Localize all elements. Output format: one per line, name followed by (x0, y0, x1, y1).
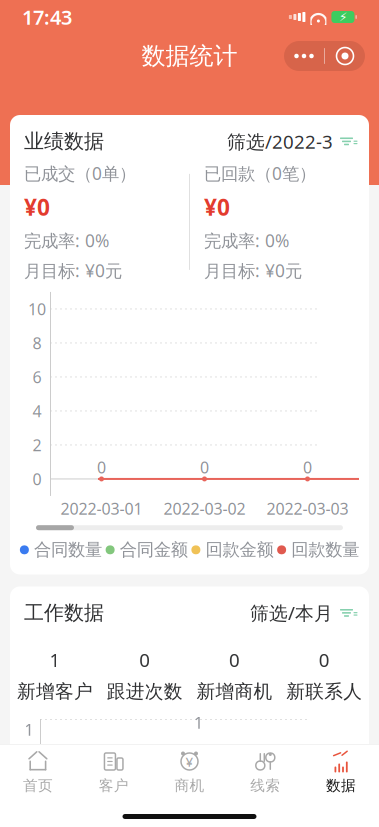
button[interactable]: 筛选/2022-3 (227, 129, 355, 154)
staticText: 4 (32, 400, 41, 421)
staticText: 2022-03-01 (60, 498, 142, 519)
staticText: 0 (319, 647, 330, 672)
button[interactable]: 数据 (303, 750, 379, 794)
staticText: 17:43 (22, 4, 72, 30)
staticText: 跟进次数 (107, 680, 183, 703)
staticText: 0 (229, 647, 240, 672)
button[interactable]: ¥ (152, 750, 227, 794)
button[interactable]: Close (325, 41, 365, 71)
staticText: 数据统计 (141, 41, 237, 71)
staticText: 10 (28, 298, 46, 319)
staticText: 线索 (250, 776, 280, 794)
staticText: 业绩数据 (24, 129, 104, 154)
staticText: 0 (139, 647, 150, 672)
staticText: 1 (194, 712, 203, 733)
staticText: 合同数量 (34, 539, 102, 560)
staticText: 完成率: 0% (204, 229, 289, 252)
staticText: 0 (200, 457, 209, 478)
staticText: ¥ (185, 753, 193, 770)
staticText: 月目标: ¥0元 (204, 259, 302, 282)
staticText: 新增客户 (17, 680, 93, 703)
button[interactable]: More (284, 41, 324, 71)
staticText: 已成交（0单） (24, 162, 136, 185)
staticText: ⚡︎ (339, 10, 347, 24)
staticText: 月目标: ¥0元 (24, 259, 122, 282)
button[interactable]: 筛选/本月 (250, 600, 355, 625)
staticText: ¥0 (24, 192, 50, 222)
staticText: ¥0 (204, 192, 230, 222)
staticText: 8 (32, 332, 41, 353)
staticText: 商机 (174, 776, 204, 794)
button[interactable]: 首页 (0, 750, 76, 794)
button[interactable]: 线索 (227, 750, 303, 794)
staticText: 回款数量 (291, 539, 359, 560)
staticText: 合同金额 (120, 539, 188, 560)
staticText: 2022-03-03 (266, 498, 348, 519)
staticText: 0 (97, 457, 106, 478)
staticText: 2022-03-02 (163, 498, 245, 519)
staticText: 工作数据 (24, 601, 104, 625)
staticText: 完成率: 0% (24, 229, 109, 252)
staticText: 新联系人 (286, 680, 362, 703)
staticText: 首页 (23, 776, 53, 794)
staticText: 筛选/2022-3 (227, 129, 333, 154)
staticText: 0 (303, 457, 312, 478)
staticText: 1 (49, 647, 60, 672)
staticText: 回款金额 (205, 539, 273, 560)
staticText: 2 (32, 434, 41, 455)
staticText: 客户 (99, 776, 129, 794)
staticText: 数据 (326, 776, 356, 794)
staticText: 0 (32, 468, 41, 489)
staticText: 已回款（0笔） (204, 162, 316, 185)
staticText: 1 (24, 719, 33, 740)
staticText: 6 (32, 366, 41, 387)
staticText: 筛选/本月 (250, 600, 333, 625)
button[interactable]: 客户 (76, 750, 152, 794)
staticText: 新增商机 (196, 680, 272, 703)
